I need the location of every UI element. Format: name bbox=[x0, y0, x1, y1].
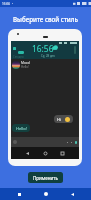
staticText: Ср, 28 дек bbox=[41, 54, 55, 58]
button[interactable]: Применить bbox=[28, 172, 63, 183]
button[interactable]: Recents bbox=[11, 188, 27, 200]
staticText: Hello! bbox=[16, 126, 27, 131]
staticText: Hello! bbox=[21, 65, 29, 69]
staticText: 16:56 bbox=[32, 43, 54, 54]
staticText: Hi bbox=[57, 117, 61, 122]
button[interactable]: Back bbox=[64, 188, 80, 200]
staticText: Выберите свой стиль bbox=[13, 15, 78, 23]
button[interactable]: Home bbox=[38, 188, 54, 200]
staticText: Сегодня bbox=[13, 55, 24, 59]
staticText: 16:56 bbox=[2, 2, 11, 6]
staticText: Применить bbox=[33, 175, 58, 181]
staticText: Mood bbox=[21, 61, 30, 65]
